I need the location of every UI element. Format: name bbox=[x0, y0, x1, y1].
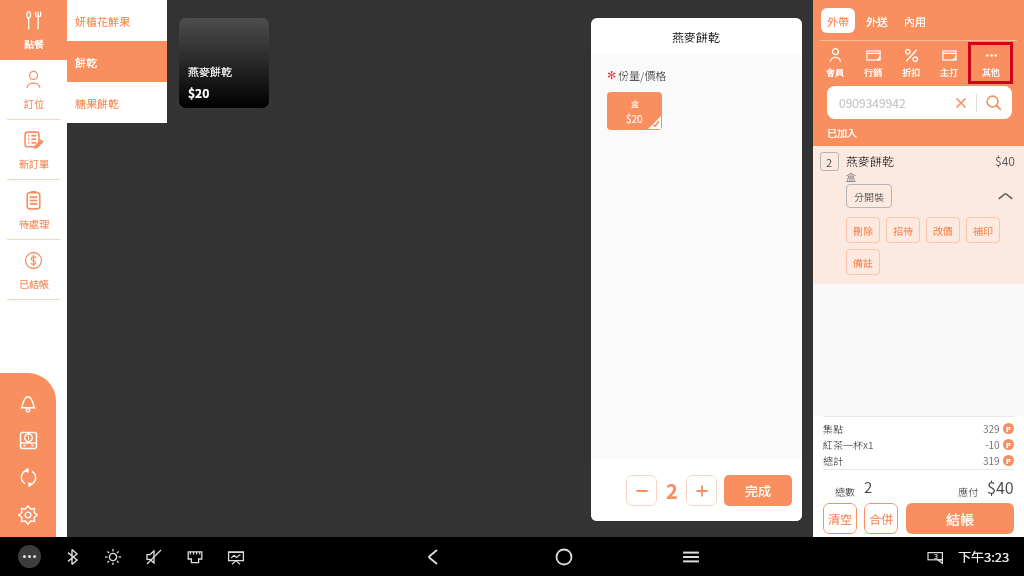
button[interactable]: 餅乾 bbox=[67, 41, 167, 82]
button[interactable]: 妍植花鮮果 bbox=[67, 0, 167, 41]
staticText: 2 bbox=[864, 476, 873, 498]
staticText: 備註 bbox=[853, 255, 873, 269]
staticText: 完成 bbox=[745, 481, 772, 500]
staticText: ✻ bbox=[607, 69, 617, 82]
staticText: 集點 bbox=[823, 421, 843, 435]
button[interactable]: eth bbox=[185, 547, 205, 567]
staticText: 行銷 bbox=[864, 66, 883, 79]
staticText: P bbox=[1006, 456, 1011, 466]
staticText: 補印 bbox=[973, 223, 993, 237]
staticText: 改價 bbox=[933, 223, 953, 237]
button[interactable]: home bbox=[553, 546, 575, 568]
staticText: $40 bbox=[995, 152, 1015, 169]
button[interactable]: msg bbox=[926, 547, 946, 567]
staticText: 合併 bbox=[869, 510, 894, 527]
button[interactable]: 合併 bbox=[864, 503, 898, 534]
button[interactable]: 2 bbox=[813, 146, 1024, 284]
staticText: 訂位 bbox=[24, 96, 44, 110]
button[interactable]: 改價 bbox=[926, 217, 960, 243]
button[interactable]: 新訂單 bbox=[0, 120, 67, 180]
button[interactable]: bright bbox=[103, 547, 123, 567]
staticText: 盒 bbox=[631, 98, 639, 110]
staticText: 待處理 bbox=[19, 216, 49, 230]
button[interactable]: 招待 bbox=[886, 217, 920, 243]
button[interactable]: Notifications bbox=[926, 547, 946, 567]
staticText: $20 bbox=[188, 84, 210, 101]
button[interactable]: 糖果餅乾 bbox=[67, 82, 167, 123]
button[interactable]: Settings bbox=[0, 504, 56, 525]
button[interactable]: back bbox=[422, 546, 444, 568]
staticText: P bbox=[1006, 424, 1011, 434]
staticText: -10 bbox=[985, 437, 1000, 451]
staticText: 應付 bbox=[958, 484, 978, 498]
button[interactable]: Sync bbox=[0, 467, 56, 488]
button[interactable]: Increase bbox=[686, 475, 717, 506]
staticText: 紅茶一杯x1 bbox=[823, 437, 874, 451]
button[interactable]: 行銷 bbox=[854, 43, 892, 83]
staticText: 清空 bbox=[828, 510, 853, 527]
button[interactable]: 分開裝 bbox=[846, 184, 892, 208]
button[interactable]: 會員 bbox=[816, 43, 854, 83]
staticText: 份量/價格 bbox=[618, 67, 667, 83]
button[interactable]: 結帳 bbox=[906, 503, 1014, 534]
button[interactable]: 其他 bbox=[972, 43, 1010, 83]
button[interactable]: 點餐 bbox=[0, 0, 67, 60]
staticText: 糖果餅乾 bbox=[75, 95, 119, 111]
staticText: 3 bbox=[934, 551, 938, 561]
staticText: 燕麥餅乾 bbox=[672, 28, 721, 45]
button[interactable]: 待處理 bbox=[0, 180, 67, 240]
staticText: 分開裝 bbox=[854, 189, 884, 203]
button[interactable]: screen bbox=[226, 547, 246, 567]
staticText: 329 bbox=[983, 421, 1000, 435]
staticText: 其他 bbox=[982, 66, 1001, 79]
button[interactable]: mute bbox=[144, 547, 164, 567]
button[interactable]: 完成 bbox=[724, 475, 792, 506]
staticText: 結帳 bbox=[946, 509, 974, 529]
staticText: 燕麥餅乾 bbox=[846, 152, 895, 169]
button[interactable]: 清空 bbox=[823, 503, 857, 534]
button[interactable]: More bbox=[18, 545, 41, 568]
staticText: 已結帳 bbox=[19, 276, 49, 290]
button[interactable]: Clear bbox=[952, 94, 970, 112]
button[interactable]: 燕麥餅乾 bbox=[179, 18, 269, 108]
button[interactable]: 內用 bbox=[902, 8, 928, 33]
button[interactable]: 補印 bbox=[966, 217, 1000, 243]
button[interactable]: 備註 bbox=[846, 249, 880, 275]
staticText: 2 bbox=[826, 154, 833, 170]
button[interactable]: 主打 bbox=[930, 43, 968, 83]
staticText: 2 bbox=[666, 476, 678, 505]
staticText: 總計 bbox=[823, 453, 843, 467]
button[interactable]: Decrease bbox=[626, 475, 657, 506]
staticText: 妍植花鮮果 bbox=[75, 13, 130, 29]
button[interactable]: 外帶 bbox=[821, 8, 855, 33]
staticText: 點餐 bbox=[24, 36, 44, 50]
staticText: 外帶 bbox=[827, 13, 849, 29]
staticText: 0909349942 bbox=[839, 94, 952, 111]
staticText: 燕麥餅乾 bbox=[188, 63, 232, 79]
button[interactable]: Collapse bbox=[995, 186, 1015, 206]
staticText: 319 bbox=[983, 453, 1000, 467]
button[interactable]: Cash drawer bbox=[0, 430, 56, 451]
staticText: 下午3:23 bbox=[958, 547, 1010, 566]
button[interactable]: bt bbox=[62, 547, 82, 567]
button[interactable]: 已結帳 bbox=[0, 240, 67, 300]
button[interactable]: 訂位 bbox=[0, 60, 67, 120]
staticText: 餅乾 bbox=[75, 54, 97, 70]
button[interactable]: 盒 bbox=[607, 92, 662, 130]
staticText: 內用 bbox=[904, 13, 926, 29]
staticText: $40 bbox=[987, 475, 1014, 498]
staticText: 已加入 bbox=[827, 125, 857, 139]
staticText: 會員 bbox=[826, 66, 845, 79]
button[interactable]: Search bbox=[985, 94, 1003, 112]
staticText: 外送 bbox=[866, 13, 888, 29]
button[interactable]: 外送 bbox=[864, 8, 890, 33]
staticText: 折扣 bbox=[902, 66, 921, 79]
button[interactable]: Notifications bbox=[0, 393, 56, 414]
button[interactable]: menu bbox=[680, 546, 702, 568]
staticText: 招待 bbox=[893, 223, 913, 237]
staticText: $20 bbox=[626, 111, 643, 125]
button[interactable]: 刪除 bbox=[846, 217, 880, 243]
button[interactable]: 折扣 bbox=[892, 43, 930, 83]
staticText: 盒 bbox=[846, 169, 856, 183]
staticText: 新訂單 bbox=[19, 156, 49, 170]
